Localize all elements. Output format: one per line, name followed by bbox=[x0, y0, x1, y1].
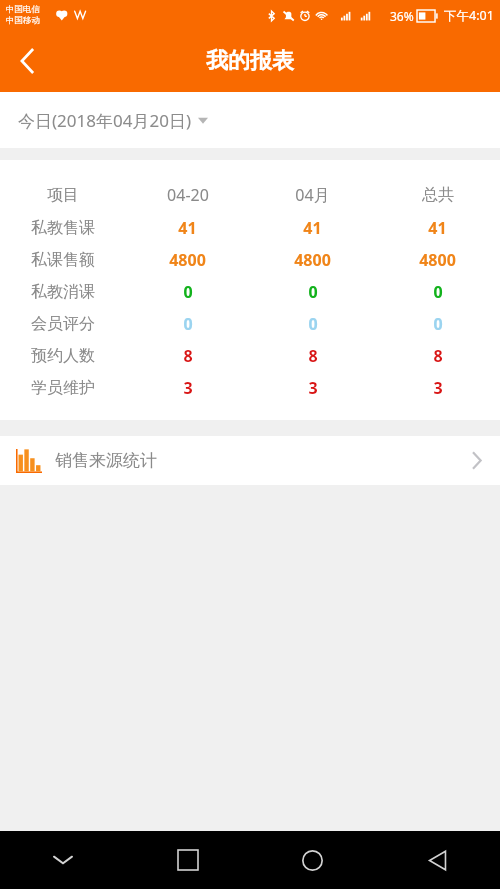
staticText: 8 bbox=[183, 345, 193, 367]
button[interactable]: Back bbox=[0, 33, 56, 89]
staticText: 销售来源统计 bbox=[55, 450, 157, 471]
button[interactable]: Hide navigation bar bbox=[0, 831, 125, 889]
button[interactable]: Back bbox=[375, 831, 500, 889]
staticText: 41 bbox=[178, 217, 197, 239]
staticText: 3 bbox=[183, 377, 193, 399]
staticText: 8 bbox=[433, 345, 443, 367]
staticText: 今日(2018年04月20日) bbox=[18, 109, 191, 132]
staticText: 41 bbox=[428, 217, 447, 239]
staticText: 中国移动 bbox=[6, 15, 40, 26]
staticText: 4800 bbox=[169, 249, 206, 271]
staticText: 预约人数 bbox=[31, 346, 95, 366]
staticText: 0 bbox=[433, 281, 443, 303]
staticText: 项目 bbox=[47, 185, 79, 205]
staticText: 36% bbox=[390, 8, 414, 24]
button[interactable]: 今日(2018年04月20日) bbox=[0, 92, 500, 148]
staticText: 0 bbox=[433, 313, 443, 335]
button[interactable]: 销售来源统计 bbox=[0, 436, 500, 485]
staticText: 下午4:01 bbox=[444, 7, 494, 24]
staticText: 0 bbox=[308, 313, 318, 335]
button[interactable]: Home bbox=[250, 831, 375, 889]
staticText: 0 bbox=[183, 313, 193, 335]
staticText: 中国电信 bbox=[6, 4, 40, 15]
button[interactable]: Recent apps bbox=[125, 831, 250, 889]
staticText: 8 bbox=[308, 345, 318, 367]
staticText: 0 bbox=[183, 281, 193, 303]
staticText: 我的报表 bbox=[206, 47, 294, 75]
staticText: 学员维护 bbox=[31, 378, 95, 398]
staticText: 私教售课 bbox=[31, 218, 95, 238]
staticText: 04-20 bbox=[167, 184, 209, 206]
staticText: 4800 bbox=[419, 249, 456, 271]
staticText: 私教消课 bbox=[31, 282, 95, 302]
staticText: 3 bbox=[308, 377, 318, 399]
staticText: 总共 bbox=[422, 185, 454, 205]
staticText: 3 bbox=[433, 377, 443, 399]
staticText: 4800 bbox=[294, 249, 331, 271]
staticText: 私课售额 bbox=[31, 250, 95, 270]
staticText: 0 bbox=[308, 281, 318, 303]
staticText: 会员评分 bbox=[31, 314, 95, 334]
staticText: 41 bbox=[303, 217, 322, 239]
staticText: 04月 bbox=[295, 184, 330, 206]
